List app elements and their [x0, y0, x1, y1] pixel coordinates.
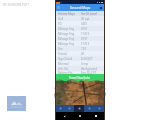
button[interactable]: TG — [56, 21, 104, 26]
button[interactable]: Hull — [56, 16, 104, 21]
button[interactable]: Site — [56, 46, 104, 51]
button[interactable]: Travel Start Jobs — [56, 74, 104, 81]
button[interactable]: Back — [56, 112, 72, 120]
staticText: Minimal — [58, 62, 69, 66]
staticText: Travel Start Jobs — [69, 76, 91, 80]
button[interactable]: Minimal — [56, 61, 104, 66]
button[interactable]: Veh. Kit — [56, 66, 104, 71]
staticText: Site — [58, 47, 63, 51]
button[interactable]: Home — [72, 112, 88, 120]
button[interactable]: Sign Detail — [56, 56, 104, 61]
button[interactable]: More options — [99, 6, 103, 10]
staticText: 17313 — [81, 42, 89, 46]
staticText: Hull — [58, 17, 64, 21]
staticText: Temp — [81, 62, 89, 66]
button[interactable]: Vehicle Maps — [56, 11, 104, 16]
button[interactable]: Recent apps — [88, 112, 104, 120]
staticText: Background — [81, 67, 97, 71]
staticText: Veh. Kit — [58, 67, 68, 71]
button[interactable]: Tab 2 — [65, 105, 74, 112]
button[interactable]: Battery Pct — [56, 71, 104, 74]
button[interactable]: Mileage Eng — [56, 41, 104, 46]
staticText: Sign Detail — [58, 57, 73, 61]
staticText: 6731 — [81, 37, 88, 41]
staticText: Mileage Eng — [58, 42, 75, 46]
staticText: Vehicle Maps — [58, 12, 76, 16]
staticText: Mileage Eng — [58, 37, 75, 41]
staticText: 6731 — [81, 27, 88, 31]
staticText: 9:41 — [57, 0, 62, 3]
button[interactable]: Tab 1 — [56, 105, 65, 112]
staticText: 40 — [81, 52, 85, 56]
staticText: Sta 00 Local — [81, 12, 97, 16]
staticText: 17313 — [81, 32, 89, 36]
staticText: Eng 50.2 PT — [81, 71, 97, 74]
staticText: Mileage Eng — [58, 27, 75, 31]
staticText: 49 ppt — [81, 17, 90, 21]
button[interactable]: Menu — [57, 6, 60, 9]
staticText: TG — [58, 22, 62, 26]
staticText: Transit — [58, 52, 67, 56]
staticText: Battery Pct — [58, 71, 73, 74]
button[interactable]: Tab 3 — [74, 105, 84, 112]
staticText: Ground Maps — [70, 6, 91, 10]
staticText: 3451 — [81, 22, 88, 26]
staticText: BY A BOOKS FIX * — [3, 3, 30, 7]
button[interactable]: Mileage Eng — [56, 36, 104, 41]
staticText: 130 — [81, 47, 86, 51]
button[interactable]: Mileage Eng — [56, 26, 104, 31]
button[interactable]: Transit — [56, 51, 104, 56]
button[interactable]: Tab 4 — [84, 105, 94, 112]
button[interactable]: Mileage Eng — [56, 31, 104, 36]
staticText: Mileage Eng — [58, 32, 75, 36]
staticText: A 34 027 — [81, 57, 93, 61]
button[interactable]: Tab 5 — [94, 105, 104, 112]
